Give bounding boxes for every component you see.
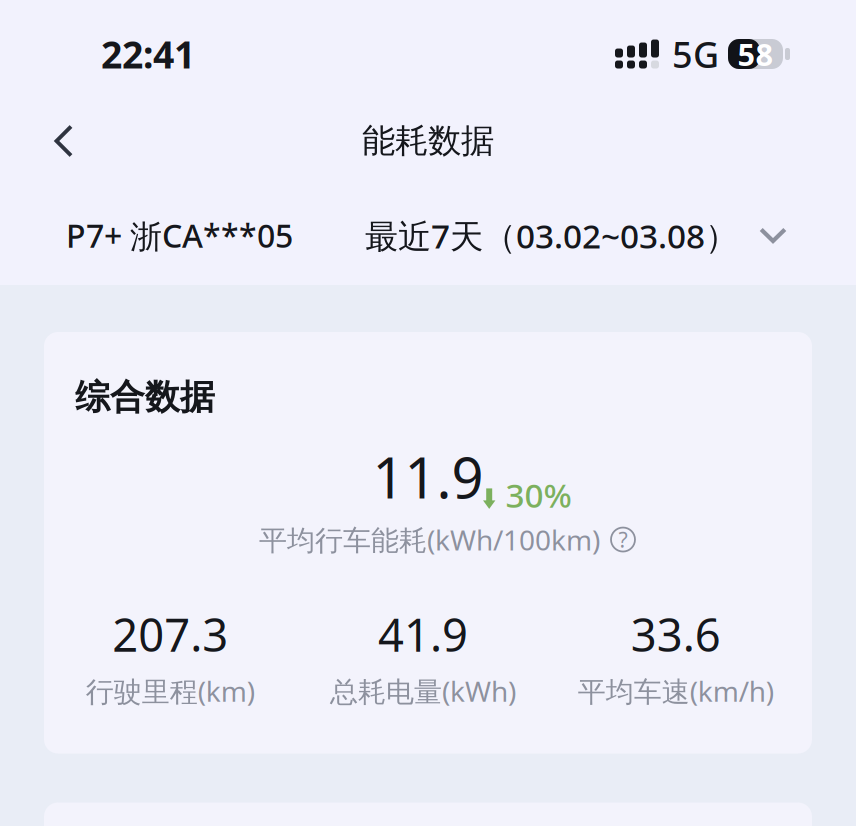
button[interactable]: P7+ 浙CA***05: [66, 214, 293, 257]
button[interactable]: Back: [36, 110, 92, 172]
staticText: 综合数据: [75, 376, 215, 419]
staticText: 行驶里程(km): [86, 672, 255, 709]
staticText: 11.9: [372, 440, 483, 514]
staticText: 平均行车能耗(kWh/100km): [259, 521, 600, 558]
staticText: 能耗数据: [362, 120, 494, 161]
staticText: 30%: [505, 473, 571, 517]
staticText: 最近7天（03.02~03.08）: [365, 213, 738, 258]
button[interactable]: 最近7天（03.02~03.08）: [365, 213, 787, 258]
staticText: 207.3: [112, 604, 228, 664]
staticText: 5G: [672, 30, 719, 78]
staticText: 平均车速(km/h): [578, 672, 774, 709]
staticText: 41.9: [378, 604, 468, 664]
staticText: 总耗电量(kWh): [330, 672, 516, 709]
staticText: 33.6: [631, 604, 721, 664]
button[interactable]: About average driving consumption: [611, 527, 635, 551]
staticText: P7+ 浙CA***05: [66, 214, 293, 257]
staticText: ?: [618, 525, 627, 554]
staticText: 58: [737, 34, 773, 74]
staticText: 22:41: [101, 29, 195, 79]
